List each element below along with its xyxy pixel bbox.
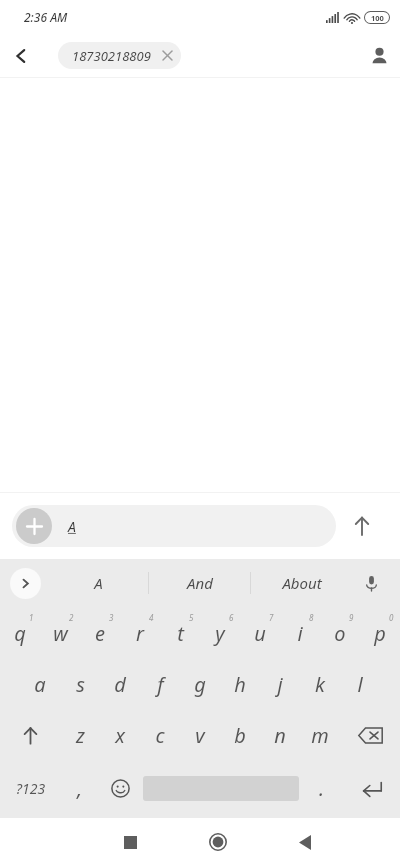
button[interactable]: b (220, 710, 260, 761)
button[interactable]: ?123 (0, 761, 61, 816)
button[interactable]: r (120, 607, 160, 659)
staticText: c (155, 722, 165, 749)
staticText: m (311, 722, 329, 749)
staticText: A (68, 517, 76, 536)
staticText: e (95, 620, 105, 647)
staticText: y (215, 620, 225, 647)
button[interactable]: . (301, 761, 343, 816)
button[interactable]: p (360, 607, 400, 659)
button[interactable]: , (61, 761, 99, 816)
staticText: 100 (371, 13, 384, 23)
button[interactable]: Voice input (354, 566, 388, 600)
button[interactable]: s (60, 659, 100, 710)
staticText: s (76, 671, 85, 698)
button[interactable]: i (280, 607, 320, 659)
button[interactable]: j (260, 659, 300, 710)
button[interactable]: Add attachment (16, 508, 52, 544)
button[interactable]: 18730218809 (58, 42, 181, 69)
staticText: w (53, 620, 68, 647)
button[interactable]: f (140, 659, 180, 710)
staticText: o (334, 620, 346, 647)
staticText: t (177, 620, 184, 647)
staticText: r (136, 620, 144, 647)
button[interactable]: Send (336, 500, 388, 552)
button[interactable]: z (60, 710, 100, 761)
staticText: f (157, 671, 164, 698)
button[interactable]: y (200, 607, 240, 659)
staticText: h (234, 671, 246, 698)
staticText: u (254, 620, 266, 647)
button[interactable]: Recents (87, 818, 174, 866)
button[interactable]: A (48, 559, 148, 607)
staticText: v (195, 722, 205, 749)
staticText: 5 (189, 612, 194, 623)
button[interactable]: Shift (0, 710, 60, 761)
button[interactable]: w (40, 607, 80, 659)
button[interactable]: k (300, 659, 340, 710)
staticText: j (277, 671, 283, 698)
button[interactable]: n (260, 710, 300, 761)
button[interactable]: Home (174, 818, 261, 866)
staticText: i (297, 620, 303, 647)
staticText: p (374, 620, 386, 647)
button[interactable]: Backspace (340, 710, 400, 761)
staticText: q (14, 620, 26, 647)
staticText: d (114, 671, 126, 698)
button[interactable]: v (180, 710, 220, 761)
button[interactable]: l (340, 659, 380, 710)
staticText: b (234, 722, 246, 749)
button[interactable]: u (240, 607, 280, 659)
staticText: x (115, 722, 125, 749)
staticText: And (187, 573, 213, 593)
staticText: 2:36 AM (24, 9, 68, 25)
button[interactable]: h (220, 659, 260, 710)
button[interactable]: d (100, 659, 140, 710)
staticText: z (76, 722, 85, 749)
button[interactable]: t (160, 607, 200, 659)
staticText: 3 (109, 612, 114, 623)
staticText: . (319, 775, 325, 802)
staticText: k (315, 671, 325, 698)
button[interactable]: And (149, 559, 250, 607)
staticText: , (77, 775, 83, 802)
button[interactable]: Back (261, 818, 348, 866)
staticText: 18730218809 (72, 47, 151, 65)
button[interactable]: g (180, 659, 220, 710)
staticText: A (94, 573, 103, 593)
button[interactable]: Add attachment (12, 505, 336, 547)
staticText: ?123 (16, 779, 46, 798)
button[interactable]: a (20, 659, 60, 710)
button[interactable]: e (80, 607, 120, 659)
button[interactable]: Enter (343, 761, 400, 816)
button[interactable]: m (300, 710, 340, 761)
staticText: 2 (69, 612, 74, 623)
staticText: 8 (309, 612, 314, 623)
button[interactable]: q (0, 607, 40, 659)
staticText: n (274, 722, 286, 749)
staticText: 4 (149, 612, 154, 623)
button[interactable]: Contact details (358, 35, 400, 77)
staticText: l (357, 671, 363, 698)
button[interactable]: More suggestions (10, 568, 41, 599)
staticText: 6 (229, 612, 234, 623)
staticText: About (282, 573, 322, 593)
staticText: 1 (29, 612, 34, 623)
staticText: 0 (389, 612, 394, 623)
button[interactable]: Back (0, 35, 42, 77)
button[interactable]: Emoji (99, 761, 141, 816)
button[interactable]: c (140, 710, 180, 761)
staticText: a (34, 671, 46, 698)
button[interactable]: o (320, 607, 360, 659)
button[interactable]: About (251, 559, 352, 607)
staticText: 9 (349, 612, 354, 623)
button[interactable]: x (100, 710, 140, 761)
staticText: 7 (269, 612, 274, 623)
staticText: g (194, 671, 206, 698)
